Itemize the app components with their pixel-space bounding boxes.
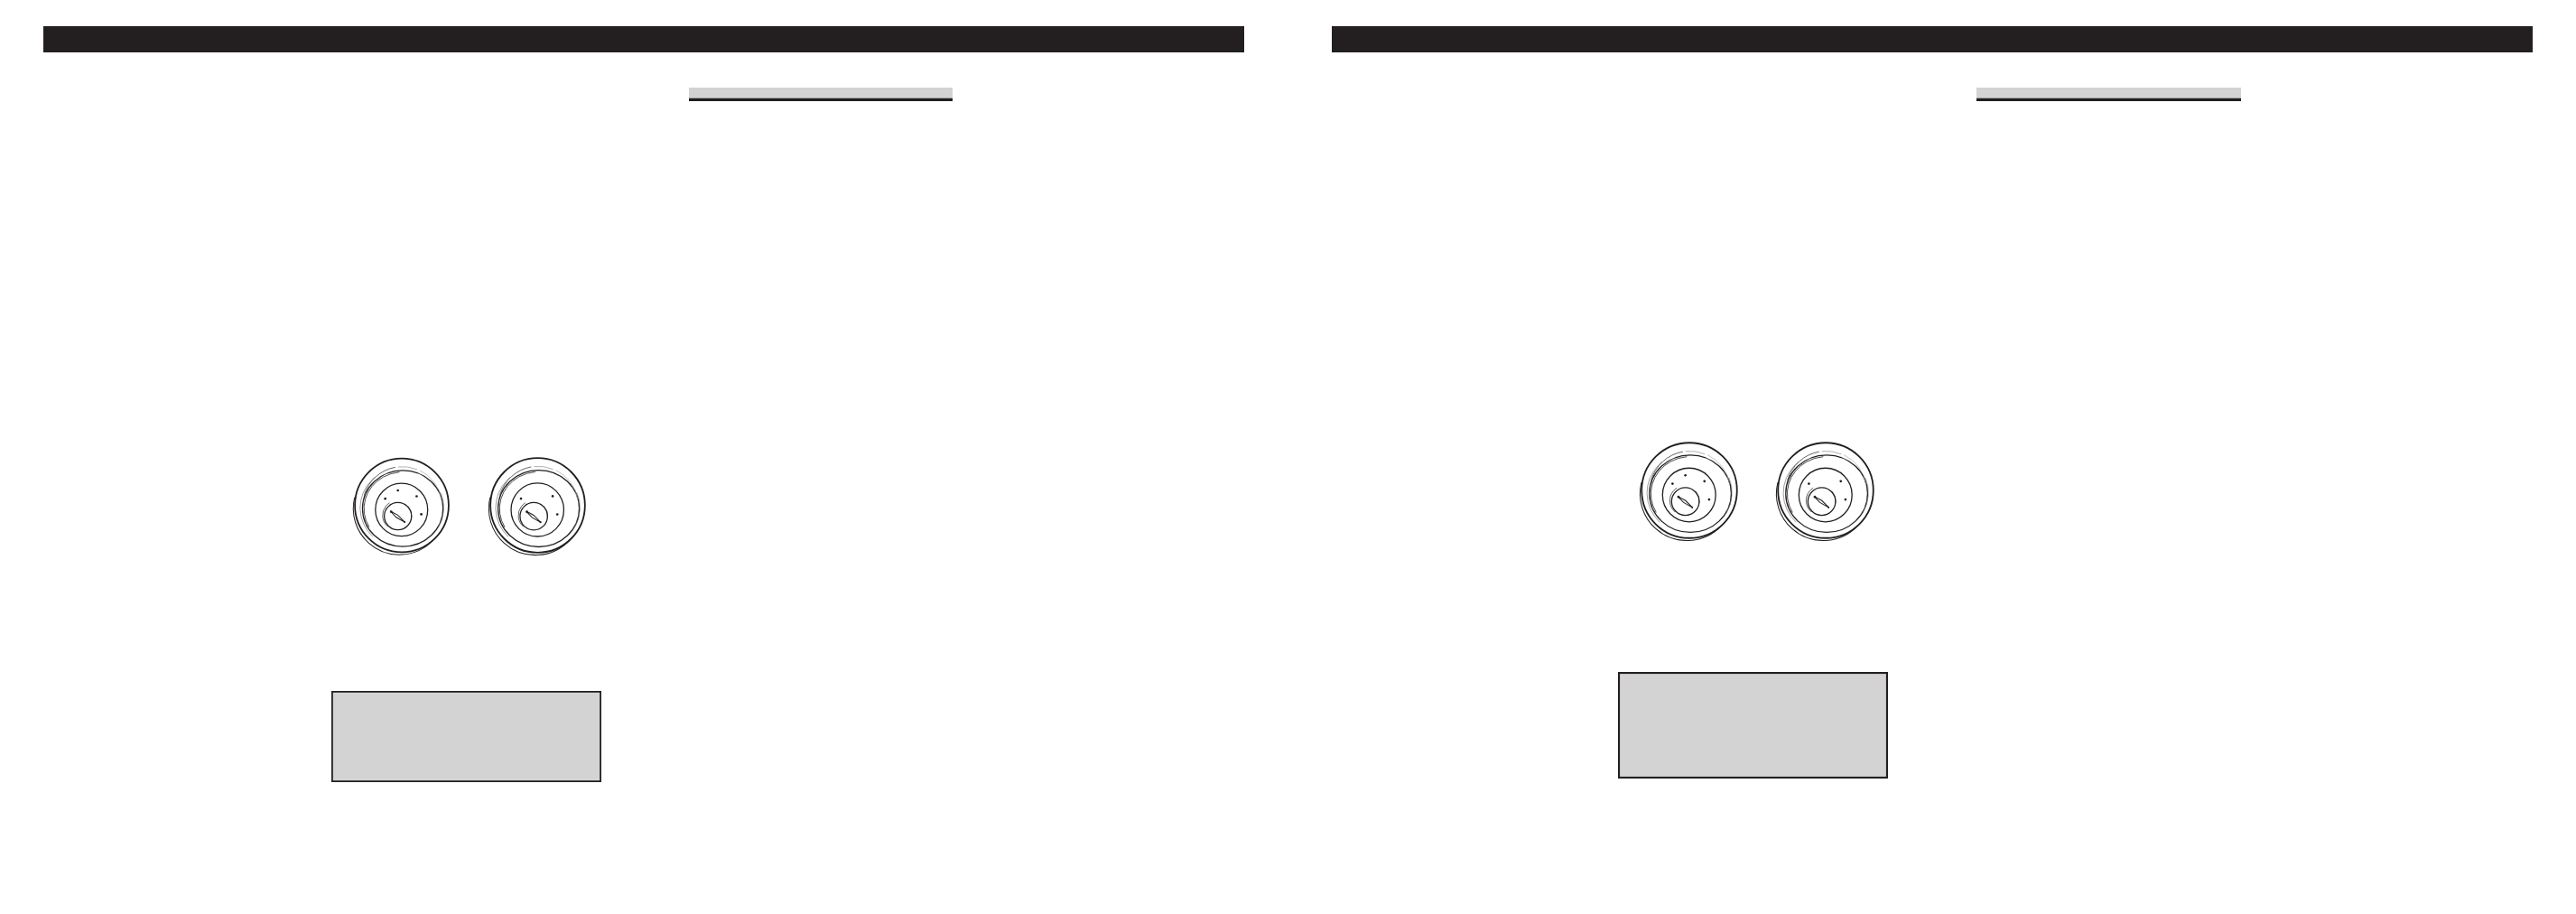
button[interactable]: Left page top app bar bbox=[43, 26, 1244, 52]
button[interactable]: Left page wheel hub diagram, first bbox=[347, 450, 457, 561]
button[interactable]: Right page caption card bbox=[1618, 672, 1888, 779]
button[interactable]: Left page search field bbox=[689, 88, 953, 101]
button[interactable]: Right page search field bbox=[1976, 88, 2241, 101]
button[interactable]: Right page top app bar bbox=[1332, 26, 2533, 52]
button[interactable]: Right page wheel hub diagram, first bbox=[1633, 434, 1745, 546]
button[interactable]: Left page wheel hub diagram, second bbox=[482, 450, 593, 561]
button[interactable]: Left page caption card bbox=[331, 691, 601, 782]
button[interactable]: Right page wheel hub diagram, second bbox=[1770, 434, 1882, 546]
